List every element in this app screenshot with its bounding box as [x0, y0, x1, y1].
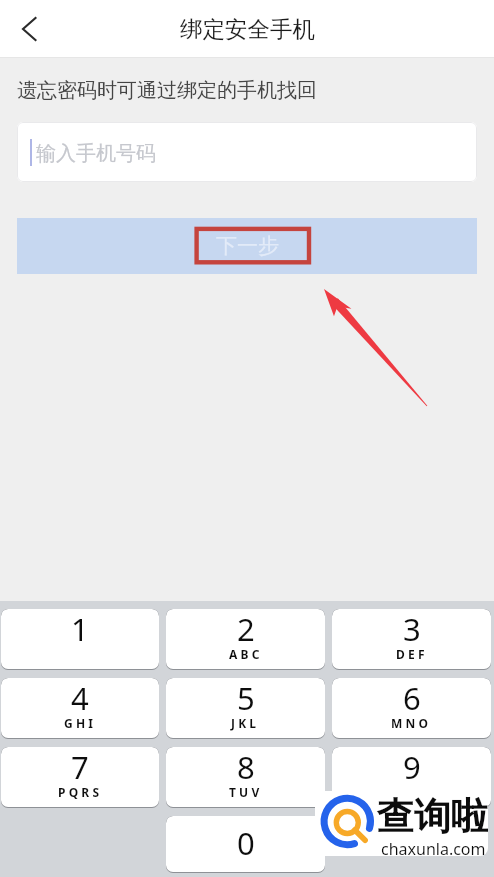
staticText: TUV: [229, 784, 263, 800]
staticText: 输入手机号码: [36, 141, 156, 166]
button[interactable]: 9: [332, 747, 491, 807]
staticText: 4: [71, 678, 89, 719]
button[interactable]: 7: [1, 747, 159, 807]
button[interactable]: Back: [0, 1, 56, 57]
staticText: 8: [237, 747, 255, 788]
button[interactable]: 5: [166, 678, 325, 738]
staticText: 3: [403, 609, 421, 650]
button[interactable]: 8: [166, 747, 325, 807]
staticText: 1: [71, 609, 89, 650]
staticText: JKL: [231, 715, 260, 731]
staticText: 2: [237, 609, 255, 650]
button[interactable]: 2: [166, 609, 325, 669]
button[interactable]: 3: [332, 609, 491, 669]
staticText: 查询啦: [377, 793, 488, 840]
staticText: 5: [237, 678, 255, 719]
button[interactable]: 1: [1, 609, 159, 669]
button[interactable]: 0: [166, 816, 325, 872]
button[interactable]: 下一步: [17, 218, 477, 274]
staticText: DEF: [396, 646, 428, 662]
button[interactable]: 6: [332, 678, 491, 738]
staticText: 9: [403, 747, 421, 788]
staticText: 6: [403, 678, 421, 719]
button[interactable]: 4: [1, 678, 159, 738]
staticText: 遗忘密码时可通过绑定的手机找回: [17, 78, 317, 103]
button[interactable]: 输入手机号码: [17, 122, 477, 182]
staticText: PQRS: [58, 784, 103, 800]
staticText: ABC: [229, 646, 263, 662]
staticText: 7: [71, 747, 89, 788]
staticText: chaxunla.com: [381, 838, 486, 856]
staticText: GHI: [64, 715, 97, 731]
staticText: 下一步: [216, 233, 279, 259]
staticText: MNO: [391, 715, 432, 731]
staticText: 0: [237, 822, 255, 864]
staticText: 绑定安全手机: [180, 15, 315, 43]
